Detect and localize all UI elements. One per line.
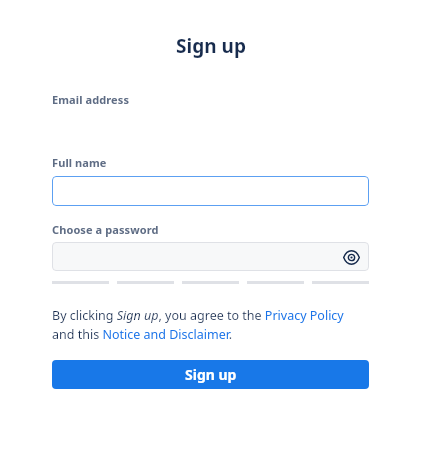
staticText: Sign up (185, 365, 237, 384)
button[interactable]: Show password (339, 245, 363, 269)
button[interactable]: Sign up (52, 360, 369, 389)
staticText: Choose a password (52, 222, 159, 237)
button[interactable]: By clicking Sign up, you agree to the Pr… (52, 307, 344, 343)
button[interactable] (52, 176, 369, 206)
button[interactable]: Show password (52, 242, 369, 271)
staticText: Email address (52, 92, 130, 107)
staticText: Sign up (0, 33, 422, 59)
staticText: Full name (52, 155, 107, 170)
